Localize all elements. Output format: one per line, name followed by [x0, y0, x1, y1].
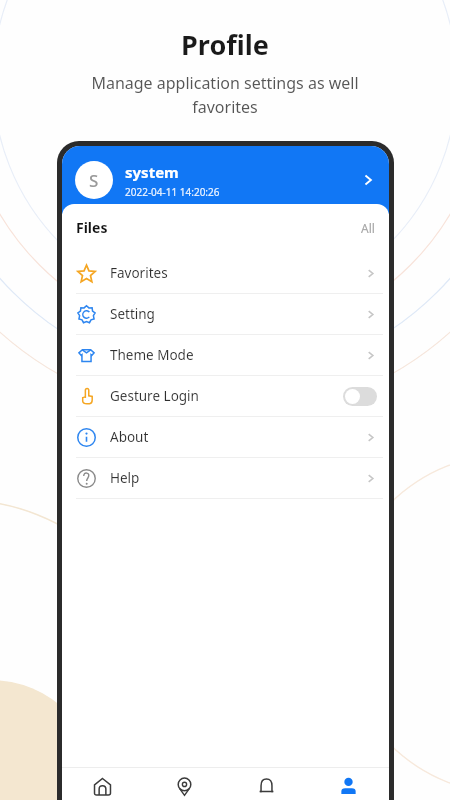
- staticText: system: [125, 162, 179, 182]
- button[interactable]: Gesture Login toggle: [343, 387, 377, 406]
- button[interactable]: Message: [225, 767, 307, 800]
- staticText: 2022-04-11 14:20:26: [125, 185, 220, 199]
- button[interactable]: Theme Mode: [62, 335, 389, 375]
- staticText: Favorites: [110, 264, 168, 282]
- button[interactable]: Setting: [62, 294, 389, 334]
- button[interactable]: Me: [307, 767, 389, 800]
- button[interactable]: Map: [143, 767, 225, 800]
- button[interactable]: S: [62, 146, 389, 214]
- staticText: Gesture Login: [110, 387, 199, 405]
- button[interactable]: Help: [62, 458, 389, 498]
- staticText: Profile: [181, 26, 269, 63]
- button[interactable]: All: [361, 220, 375, 236]
- button[interactable]: Favorites: [62, 253, 389, 293]
- staticText: Files: [76, 218, 108, 237]
- staticText: Theme Mode: [110, 346, 194, 364]
- button[interactable]: Home: [62, 767, 143, 800]
- staticText: Setting: [110, 305, 155, 323]
- staticText: Manage application settings as well favo…: [60, 72, 390, 118]
- staticText: About: [110, 428, 149, 446]
- staticText: All: [361, 220, 375, 236]
- button[interactable]: About: [62, 417, 389, 457]
- button[interactable]: Gesture Login: [62, 376, 389, 416]
- staticText: S: [89, 169, 99, 192]
- staticText: Help: [110, 469, 140, 487]
